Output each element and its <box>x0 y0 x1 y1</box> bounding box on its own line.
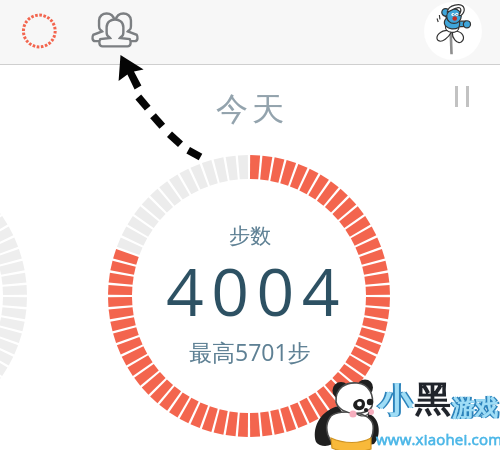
staticText: 步数 <box>229 223 271 249</box>
staticText: 黑 <box>412 377 448 422</box>
button[interactable]: Today activity <box>19 11 60 52</box>
staticText: 小 <box>380 380 414 423</box>
staticText: 黑 <box>417 377 453 422</box>
staticText: 黑 <box>414 377 450 422</box>
button[interactable]: Step count dial, 4004 steps <box>108 155 390 437</box>
button[interactable]: 今天 <box>214 89 286 129</box>
button[interactable]: Pause <box>453 85 473 105</box>
staticText: 4004 <box>166 245 347 335</box>
staticText: 最高5701步 <box>189 336 311 367</box>
staticText: 游戏 <box>450 394 496 423</box>
staticText: 游戏 <box>452 394 498 423</box>
staticText: 今天 <box>214 89 286 129</box>
staticText: 小 <box>378 380 412 423</box>
button[interactable]: Friends <box>92 9 138 49</box>
staticText: www.xiaohei.com <box>376 429 500 449</box>
staticText: 小 <box>376 380 410 423</box>
staticText: 游戏 <box>454 394 500 423</box>
button[interactable]: Profile <box>424 2 482 60</box>
